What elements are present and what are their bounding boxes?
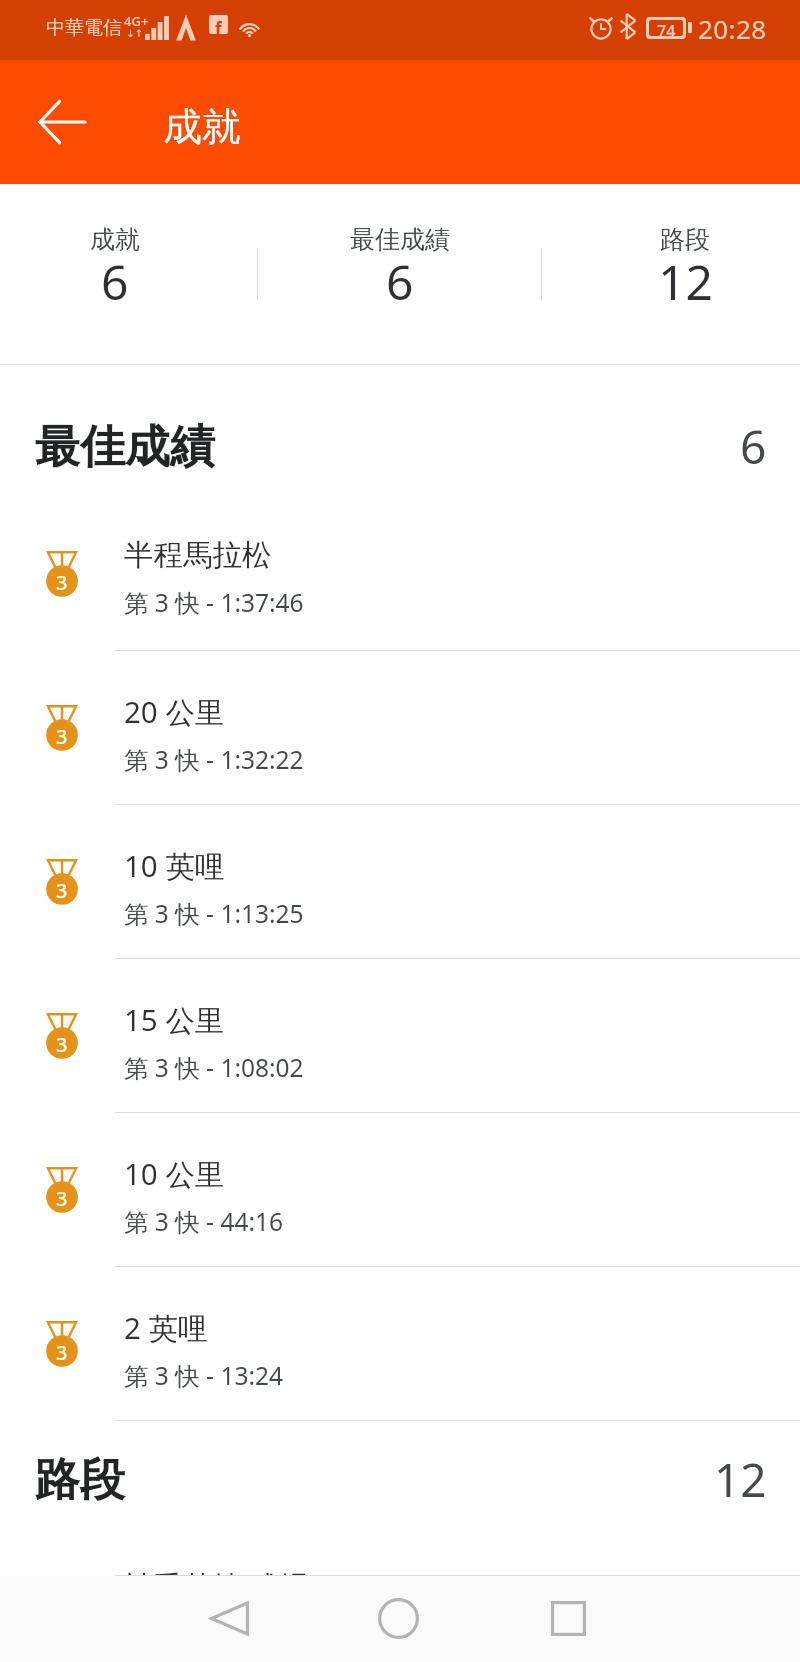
staticText: 3	[56, 1339, 68, 1366]
staticText: 成就	[90, 224, 140, 255]
staticText: 20 公里	[124, 691, 225, 731]
staticText: 12	[714, 1448, 767, 1511]
staticText: 6	[386, 249, 414, 314]
staticText: 3	[56, 723, 68, 750]
button[interactable]: 3	[0, 1525, 800, 1576]
button[interactable]: Back	[28, 88, 96, 156]
button[interactable]: 3	[0, 959, 800, 1113]
button[interactable]: 3	[0, 1267, 800, 1421]
staticText: 路段	[35, 1452, 125, 1509]
staticText: 74	[657, 20, 676, 36]
staticText: 第 3 快 - 1:08:02	[124, 1051, 304, 1084]
staticText: 成就	[163, 102, 241, 151]
staticText: 10 公里	[124, 1153, 225, 1193]
staticText: 3	[56, 877, 68, 904]
button[interactable]: 3	[0, 1113, 800, 1267]
staticText: 第 3 快 - 1:37:46	[124, 586, 304, 619]
staticText: 6	[101, 249, 129, 314]
button[interactable]: 3	[0, 651, 800, 805]
staticText: 第 3 快 - 13:24	[124, 1359, 284, 1392]
button[interactable]: Back	[192, 1581, 267, 1656]
button[interactable]: 最佳成績	[310, 184, 490, 364]
staticText: 第 3 快 - 1:32:22	[124, 743, 304, 776]
staticText: 3	[56, 569, 68, 596]
staticText: 半程馬拉松	[124, 537, 272, 574]
staticText: 15 公里	[124, 999, 225, 1039]
button[interactable]: 3	[0, 805, 800, 959]
staticText: 最佳成績	[350, 224, 450, 255]
staticText: 6	[740, 415, 767, 478]
button[interactable]: 3	[0, 497, 800, 651]
button[interactable]: Recents	[531, 1581, 606, 1656]
button[interactable]: 路段	[595, 184, 775, 364]
staticText: 路段	[660, 224, 710, 255]
staticText: 2 英哩	[124, 1307, 208, 1347]
staticText: 3	[56, 1031, 68, 1058]
staticText: ↓↑	[126, 28, 143, 40]
button[interactable]: 成就	[25, 184, 205, 364]
staticText: 中華電信	[46, 16, 122, 40]
staticText: 第 3 快 - 1:13:25	[124, 897, 304, 930]
staticText: 神乎其技 成場 一	[124, 1565, 346, 1605]
staticText: 第 3 快 - 44:16	[124, 1205, 284, 1238]
staticText: 12	[658, 249, 713, 314]
staticText: 3	[56, 1185, 68, 1212]
staticText: f	[215, 17, 222, 34]
staticText: 4G+	[124, 12, 149, 30]
staticText: 最佳成績	[35, 419, 215, 476]
staticText: 20:28	[698, 11, 767, 46]
button[interactable]: Home	[361, 1581, 436, 1656]
staticText: 10 英哩	[124, 845, 225, 885]
